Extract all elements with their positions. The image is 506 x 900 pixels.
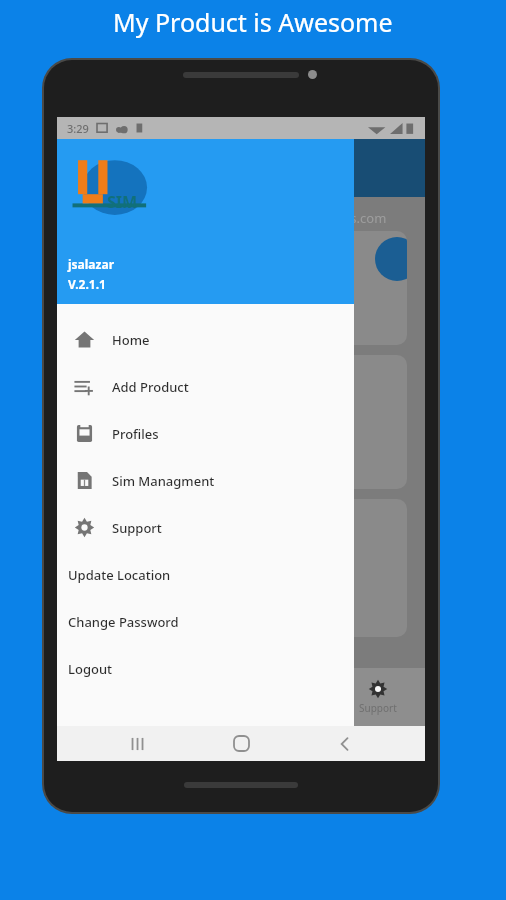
button[interactable]: Add Product (57, 363, 354, 410)
staticText: My Product is Awesome (113, 5, 393, 39)
button[interactable]: Support (57, 504, 354, 551)
staticText: Logout (68, 660, 113, 678)
button[interactable]: Back (321, 726, 369, 761)
button[interactable]: Sim Managment (57, 457, 354, 504)
staticText: 3:29 (67, 121, 89, 136)
staticText: Add Product (112, 378, 189, 396)
button[interactable]: Logout (57, 645, 354, 692)
button[interactable]: Change Password (57, 598, 354, 645)
staticText: Sim Managment (112, 472, 215, 490)
button[interactable]: Profiles (57, 410, 354, 457)
button[interactable]: Home (217, 726, 265, 761)
staticText: usim-plus.com (297, 209, 387, 227)
staticText: SIM (107, 191, 138, 213)
staticText: Home (112, 331, 150, 349)
button[interactable]: Recent apps (113, 726, 161, 761)
staticText: Support (112, 519, 162, 537)
staticText: Support (359, 701, 397, 715)
staticText: Profiles (112, 425, 159, 443)
button[interactable]: Home (57, 316, 354, 363)
staticText: jsalazar (68, 256, 115, 272)
staticText: V.2.1.1 (68, 276, 106, 292)
staticText: Change Password (68, 613, 179, 631)
button[interactable]: Update Location (57, 551, 354, 598)
staticText: Update Location (68, 566, 171, 584)
